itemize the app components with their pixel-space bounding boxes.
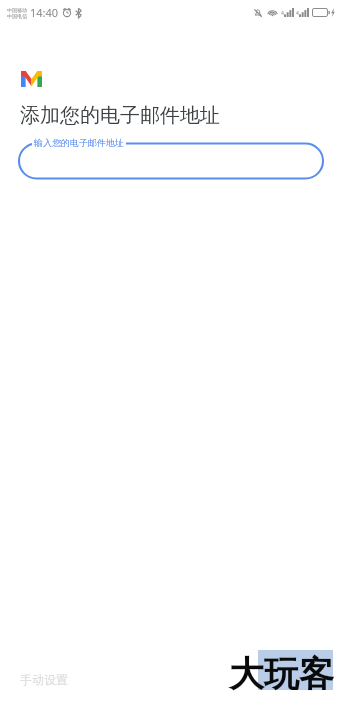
staticText: 14:40 [30,5,59,20]
button[interactable]: 手动设置 [0,672,68,708]
staticText: 4 [281,10,284,17]
staticText: 4 [296,10,299,17]
staticText: 中国电信 [7,13,27,19]
staticText: 大玩客 [229,652,334,696]
staticText: 添加您的电子邮件地址 [20,103,220,128]
button[interactable]: 输入您的电子邮件地址 [0,138,343,184]
staticText: 输入您的电子邮件地址 [34,137,124,148]
staticText: 中国移动 [7,7,27,13]
